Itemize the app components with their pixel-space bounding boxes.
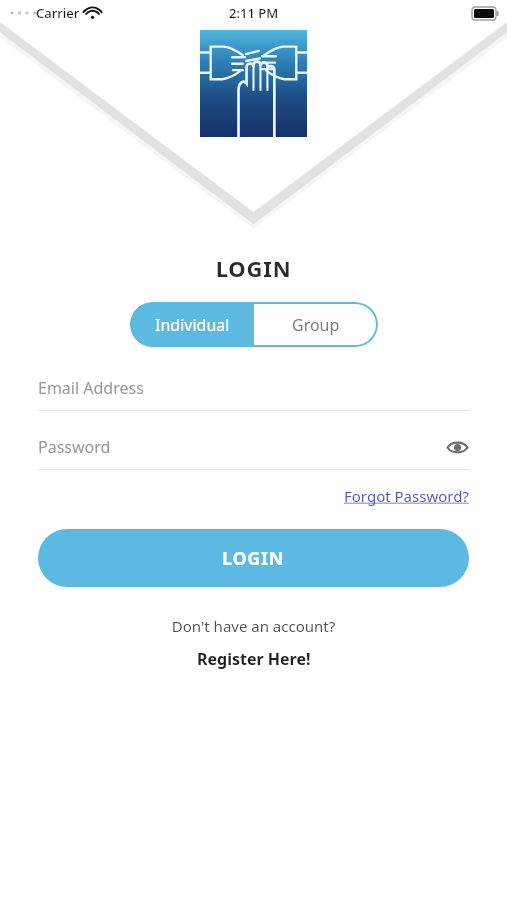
button[interactable]: Register Here!: [197, 648, 311, 670]
staticText: Register Here!: [197, 648, 311, 670]
staticText: 2:11 PM: [229, 4, 279, 22]
staticText: Email Address: [38, 377, 469, 399]
staticText: Don't have an account?: [0, 616, 507, 636]
staticText: Carrier: [36, 4, 80, 22]
button[interactable]: Email Address: [38, 373, 469, 411]
staticText: LOGIN: [0, 253, 507, 283]
staticText: Individual: [155, 314, 230, 336]
button[interactable]: LOGIN: [38, 529, 469, 587]
button[interactable]: Group: [254, 302, 378, 347]
button[interactable]: Forgot Password?: [344, 486, 469, 506]
button[interactable]: Individual: [130, 302, 254, 347]
staticText: LOGIN: [222, 546, 285, 571]
staticText: Password: [38, 436, 445, 458]
button[interactable]: Show password: [445, 435, 469, 459]
staticText: Group: [292, 314, 340, 336]
button[interactable]: Password: [38, 432, 469, 470]
staticText: Forgot Password?: [344, 486, 469, 506]
